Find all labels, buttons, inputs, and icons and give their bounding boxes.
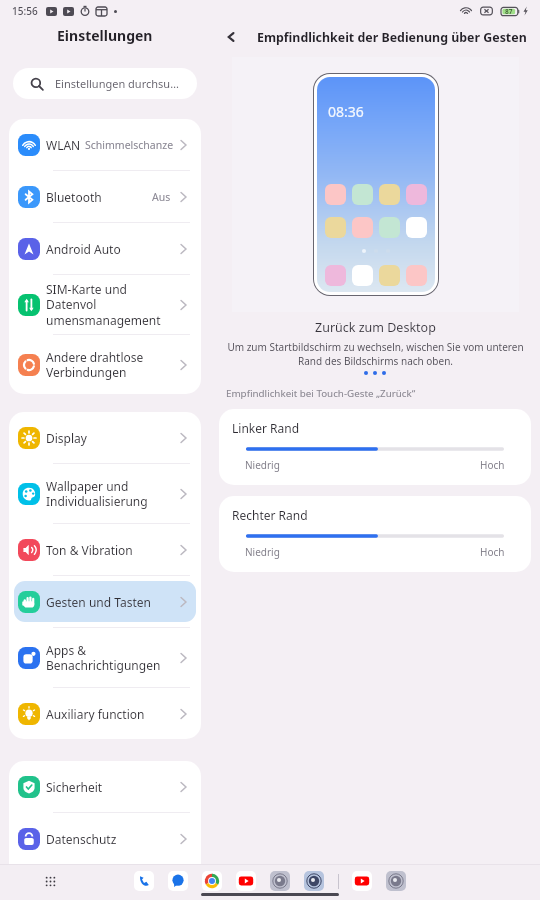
button[interactable]: Kamera <box>386 871 406 891</box>
button[interactable]: Linker Rand <box>219 409 531 485</box>
staticText: Ton & Vibration <box>46 542 133 558</box>
staticText: Datenschutz <box>46 831 117 847</box>
staticText: Wallpaper und Individualisierung <box>46 478 148 510</box>
button[interactable]: SIM-Karte und Datenvol umensmanagement <box>14 280 196 329</box>
button[interactable]: Kamera <box>270 871 290 891</box>
button[interactable]: Chrome <box>202 871 222 891</box>
button[interactable]: YouTube <box>236 871 256 891</box>
button[interactable]: Andere drahtlose Verbindungen <box>14 340 196 389</box>
button[interactable]: Apps & Benachrichtigungen <box>14 633 196 682</box>
staticText: Andere drahtlose Verbindungen <box>46 349 144 381</box>
button[interactable]: Wallpaper und Individualisierung <box>14 469 196 518</box>
staticText: Zurück zum Desktop <box>315 319 436 336</box>
staticText: Um zum Startbildschirm zu wechseln, wisc… <box>227 340 524 368</box>
staticText: Linker Rand <box>232 420 300 436</box>
staticText: 15:56 <box>12 4 38 18</box>
button[interactable]: Display <box>14 417 196 458</box>
button[interactable]: YouTube <box>352 871 372 891</box>
staticText: Aus <box>152 190 171 204</box>
button[interactable]: Ton & Vibration <box>14 529 196 570</box>
button[interactable]: Datenschutz <box>14 818 196 859</box>
staticText: Einstellungen durchsu… <box>55 76 179 91</box>
staticText: Standort <box>46 875 95 891</box>
staticText: Auxiliary function <box>46 706 145 722</box>
button[interactable]: Galerie <box>304 871 324 891</box>
button[interactable]: Zurück <box>219 25 243 49</box>
button[interactable]: Telefon <box>134 871 154 891</box>
staticText: Einstellungen <box>57 26 153 45</box>
button[interactable]: Standort <box>14 870 196 895</box>
staticText: Empfindlichkeit bei Touch-Geste „Zurück“ <box>226 387 416 400</box>
staticText: Hoch <box>480 458 505 472</box>
staticText: Schimmelschanze <box>85 138 174 152</box>
button[interactable]: Rechter Rand <box>219 496 531 572</box>
staticText: Rechter Rand <box>232 507 308 523</box>
staticText: Hoch <box>480 545 505 559</box>
staticText: Empfindlichkeit der Bedienung über Geste… <box>257 29 527 46</box>
button[interactable]: WLAN <box>14 124 196 165</box>
staticText: Bluetooth <box>46 189 102 205</box>
staticText: Android Auto <box>46 241 121 257</box>
button[interactable]: Android Auto <box>14 228 196 269</box>
button[interactable]: Gesten und Tasten <box>14 581 196 622</box>
staticText: Niedrig <box>245 545 280 559</box>
button[interactable]: Sicherheit <box>14 766 196 807</box>
staticText: SIM-Karte und Datenvol umensmanagement <box>46 281 180 329</box>
staticText: Niedrig <box>245 458 280 472</box>
button[interactable]: Alle Apps <box>45 876 56 887</box>
staticText: Apps & Benachrichtigungen <box>46 642 161 674</box>
staticText: 08:36 <box>328 102 364 121</box>
staticText: Display <box>46 430 87 446</box>
button[interactable]: Auxiliary function <box>14 693 196 734</box>
staticText: Sicherheit <box>46 779 103 795</box>
staticText: 87 <box>505 7 513 16</box>
staticText: WLAN <box>46 137 81 153</box>
button[interactable]: Bluetooth <box>14 176 196 217</box>
staticText: Gesten und Tasten <box>46 594 151 610</box>
button[interactable]: Einstellungen durchsu… <box>13 68 197 99</box>
button[interactable]: Nachrichten <box>168 871 188 891</box>
